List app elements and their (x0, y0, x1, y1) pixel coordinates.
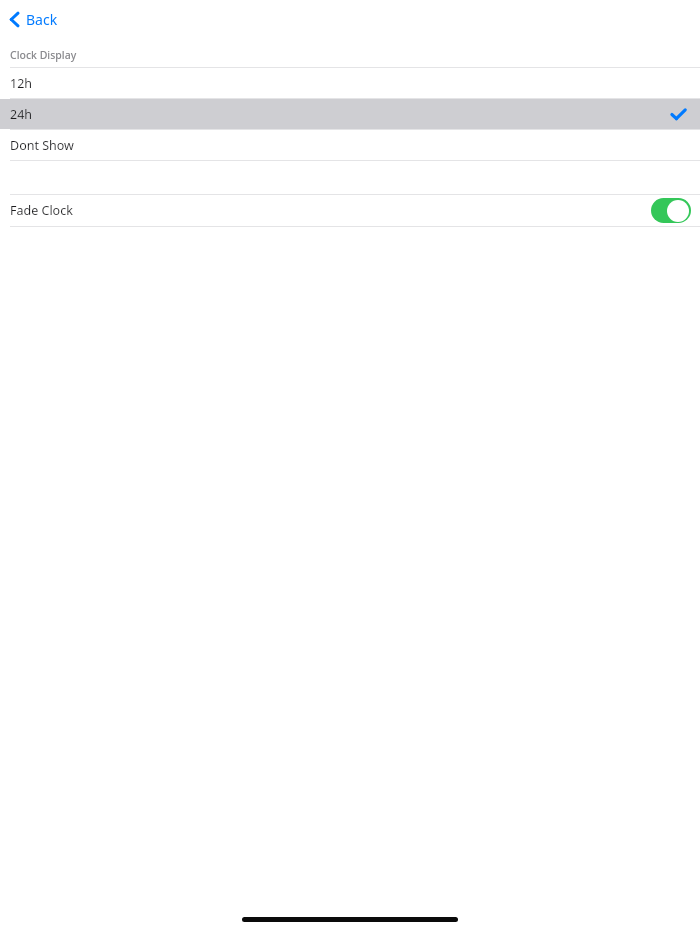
button[interactable]: 24h (0, 99, 700, 129)
button[interactable]: 12h (0, 68, 700, 98)
button[interactable]: Dont Show (0, 130, 700, 160)
button[interactable]: Fade Clock (0, 195, 700, 226)
button[interactable]: Back (5, 7, 62, 32)
button[interactable]: Fade Clock toggle (651, 198, 691, 223)
staticText: Clock Display (10, 48, 77, 62)
staticText: Fade Clock (10, 202, 73, 219)
staticText: 12h (10, 75, 33, 92)
staticText: 24h (10, 106, 33, 123)
staticText: Dont Show (10, 137, 74, 154)
staticText: Back (26, 10, 58, 29)
